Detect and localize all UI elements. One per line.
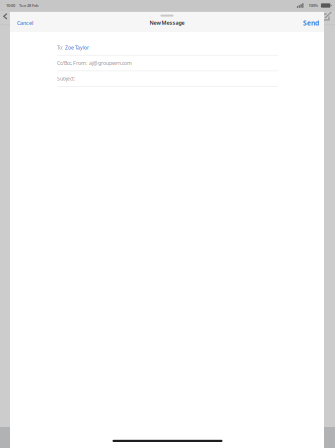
staticText: Send <box>303 19 319 27</box>
button[interactable]: Send <box>301 16 321 30</box>
button[interactable]: Back <box>3 13 8 20</box>
staticText: Tue 28 Feb <box>19 3 39 8</box>
button[interactable]: Compose <box>322 11 332 20</box>
staticText: Subject: <box>57 75 75 82</box>
staticText: Zoe Taylor <box>65 44 89 51</box>
button[interactable]: Cancel <box>13 16 37 30</box>
staticText: Cancel <box>17 19 33 27</box>
staticText: 100% <box>308 3 318 8</box>
staticText: New Message <box>149 19 184 26</box>
staticText: To: <box>57 44 63 51</box>
staticText: Cc/Bcc, From: <box>57 60 87 66</box>
staticText: aj@groupwrn.com <box>89 60 132 66</box>
staticText: 10:00 <box>6 3 15 8</box>
